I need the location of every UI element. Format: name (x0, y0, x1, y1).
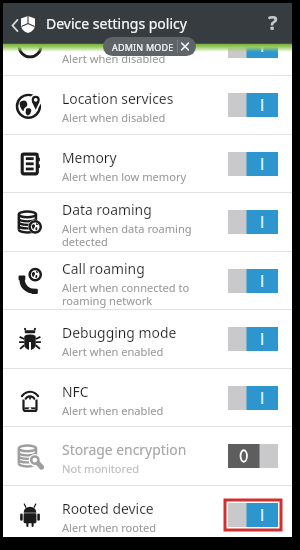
button[interactable]: NFC toggle (228, 369, 292, 427)
staticText: Alert when enabled (62, 344, 164, 359)
button[interactable]: Rooted device toggle (228, 486, 292, 544)
button[interactable]: Call roaming (3, 252, 292, 310)
button[interactable]: NFC (3, 369, 292, 427)
button[interactable]: Data roaming toggle (228, 193, 292, 251)
button[interactable]: Location services (3, 76, 292, 134)
button[interactable]: ADMIN MODE (103, 37, 196, 56)
staticText: ADMIN MODE (112, 41, 174, 53)
staticText: Alert when low memory (62, 169, 187, 184)
staticText: Storage encryption (62, 440, 187, 459)
staticText: Not monitored (62, 461, 139, 476)
button[interactable]: Memory toggle (228, 135, 292, 193)
staticText: Call roaming (62, 259, 145, 278)
staticText: Device settings policy (46, 14, 187, 33)
button[interactable]: Debugging mode (3, 310, 292, 368)
staticText: NFC (62, 382, 89, 401)
button[interactable]: Screen lock toggle (228, 17, 292, 75)
staticText: Alert when connected to roaming network (62, 280, 190, 308)
staticText: Alert when enabled (62, 403, 164, 418)
staticText: Screen lock (62, 30, 136, 49)
button[interactable]: Screen lock (3, 17, 292, 75)
staticText: Alert when data roaming detected (62, 221, 192, 249)
button[interactable]: Storage encryption (3, 427, 292, 485)
staticText: Memory (62, 148, 117, 167)
button[interactable]: Memory (3, 135, 292, 193)
staticText: Rooted device (62, 499, 154, 518)
button[interactable]: Rooted device (3, 486, 292, 544)
button[interactable]: Debugging mode toggle (228, 310, 292, 368)
staticText: Alert when disabled (62, 51, 166, 66)
staticText: ? (268, 9, 278, 36)
button[interactable]: Location services toggle (228, 76, 292, 134)
button[interactable]: Back (3, 3, 41, 43)
button[interactable]: Data roaming (3, 193, 292, 251)
staticText: Alert when rooted (62, 520, 157, 535)
staticText: Data roaming (62, 200, 152, 219)
button[interactable]: Help (253, 3, 292, 43)
button[interactable]: Storage encryption toggle (228, 427, 292, 485)
button[interactable]: Call roaming toggle (228, 252, 292, 310)
staticText: Alert when disabled (62, 110, 166, 125)
staticText: Location services (62, 89, 174, 108)
staticText: Debugging mode (62, 323, 177, 342)
